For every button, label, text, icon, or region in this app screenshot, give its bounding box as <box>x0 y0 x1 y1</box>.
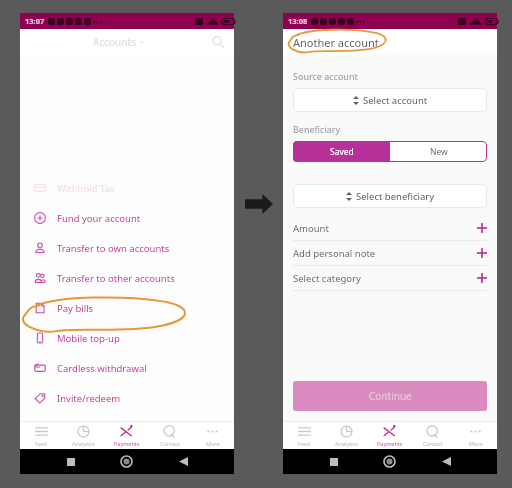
staticText: 13:08 <box>288 16 308 26</box>
button[interactable]: Select account <box>293 88 487 112</box>
staticText: Fund your account <box>57 212 141 225</box>
staticText: Accounts <box>93 35 136 49</box>
staticText: Transfer to own accounts <box>57 242 170 255</box>
staticText: Payments <box>377 440 403 447</box>
button[interactable]: Pay bills <box>20 293 234 323</box>
button[interactable]: Withhold Tax <box>20 173 234 203</box>
staticText: Select beneficiary <box>356 190 435 203</box>
button[interactable]: Select beneficiary <box>293 184 487 208</box>
button[interactable]: Analytics <box>62 422 105 449</box>
staticText: Continue <box>369 389 412 403</box>
button[interactable]: Select category <box>293 266 487 290</box>
button[interactable]: Accounts <box>93 35 144 49</box>
button[interactable]: More <box>191 422 234 449</box>
button[interactable]: Payments <box>105 422 148 449</box>
staticText: Another account <box>293 35 379 50</box>
staticText: Withhold Tax <box>57 182 115 195</box>
staticText: Amount <box>293 222 329 235</box>
staticText: Saved <box>330 146 354 158</box>
staticText: Pay bills <box>57 302 94 315</box>
button[interactable]: Analytics <box>325 422 368 449</box>
button[interactable]: Saved <box>293 141 390 162</box>
staticText: Select account <box>363 94 428 107</box>
button[interactable]: Search <box>210 34 226 50</box>
staticText: More <box>206 440 220 447</box>
button[interactable]: Contact <box>148 422 191 449</box>
staticText: Analytics <box>335 440 358 447</box>
button[interactable]: Contact <box>411 422 454 449</box>
button[interactable]: Fund your account <box>20 203 234 233</box>
button[interactable]: Transfer to own accounts <box>20 233 234 263</box>
button[interactable]: Feed <box>283 422 325 449</box>
staticText: Invite/redeem <box>57 392 121 405</box>
button[interactable]: Invite/redeem <box>20 383 234 413</box>
staticText: Feed <box>298 440 311 447</box>
staticText: Cardless withdrawal <box>57 362 147 375</box>
staticText: Payments <box>114 440 140 447</box>
staticText: 13:07 <box>25 16 45 26</box>
staticText: Source account <box>293 70 358 82</box>
staticText: Transfer to other accounts <box>57 272 175 285</box>
staticText: Analytics <box>72 440 95 447</box>
staticText: More <box>469 440 483 447</box>
button[interactable]: Mobile top-up <box>20 323 234 353</box>
button[interactable]: Transfer to other accounts <box>20 263 234 293</box>
button[interactable]: Continue <box>293 381 487 411</box>
button[interactable]: New <box>390 141 487 162</box>
staticText: Mobile top-up <box>57 332 120 345</box>
button[interactable]: More <box>454 422 497 449</box>
staticText: Beneficiary <box>293 123 340 135</box>
button[interactable]: Cardless withdrawal <box>20 353 234 383</box>
button[interactable]: Add personal note <box>293 241 487 265</box>
staticText: Contact <box>423 440 443 447</box>
staticText: Select category <box>293 272 361 285</box>
button[interactable]: Amount <box>293 216 487 240</box>
button[interactable]: Feed <box>20 422 62 449</box>
button[interactable]: Payments <box>368 422 411 449</box>
staticText: Add personal note <box>293 247 376 260</box>
staticText: Contact <box>160 440 180 447</box>
staticText: New <box>430 146 448 158</box>
staticText: Feed <box>35 440 48 447</box>
